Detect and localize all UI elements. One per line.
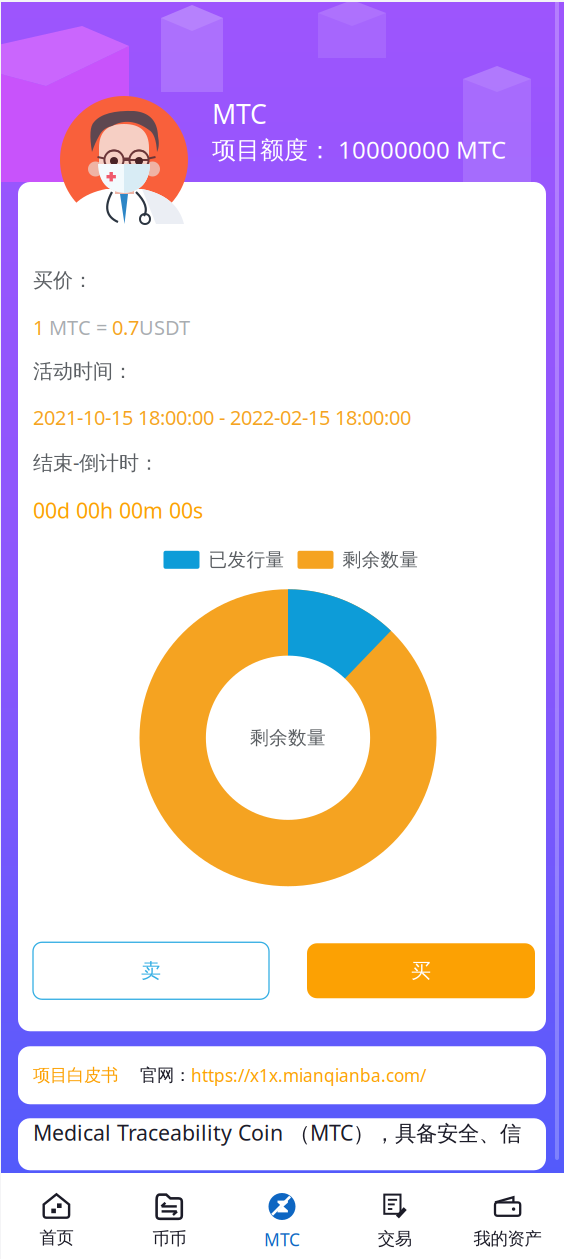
button[interactable]: 项目白皮书: [33, 1065, 118, 1086]
staticText: 剩余数量: [342, 548, 418, 571]
staticText: https://x1x.mianqianba.com/: [191, 1064, 426, 1087]
staticText: 剩余数量: [250, 726, 326, 749]
staticText: 买价：: [33, 268, 93, 293]
staticText: 2021-10-15 18:00:00 - 2022-02-15 18:00:0…: [33, 404, 411, 431]
staticText: 首页: [39, 1227, 73, 1248]
staticText: 我的资产: [474, 1228, 542, 1249]
staticText: 已发行量: [208, 548, 284, 571]
button[interactable]: 交易: [338, 1173, 451, 1259]
staticText: 卖: [141, 958, 161, 983]
button[interactable]: 首页: [0, 1173, 113, 1259]
staticText: 00d 00h 00m 00s: [33, 496, 203, 524]
staticText: 0.7: [112, 314, 139, 341]
staticText: MTC: [264, 1228, 300, 1251]
staticText: 官网：: [140, 1065, 191, 1086]
staticText: USDT: [139, 314, 190, 341]
button[interactable]: https://x1x.mianqianba.com/: [191, 1064, 426, 1087]
button[interactable]: 币币: [113, 1173, 226, 1259]
staticText: 结束-倒计时：: [33, 449, 159, 476]
staticText: 活动时间：: [33, 359, 133, 384]
staticText: Medical Traceability Coin （MTC），具备安全、信: [33, 1118, 521, 1147]
staticText: 买: [411, 958, 431, 983]
staticText: MTC =: [44, 314, 112, 341]
staticText: 项目额度： 10000000 MTC: [212, 133, 506, 165]
staticText: 币币: [152, 1228, 186, 1249]
button[interactable]: MTC: [226, 1173, 338, 1259]
staticText: 1: [33, 314, 44, 341]
staticText: 交易: [378, 1228, 412, 1249]
button[interactable]: 买: [307, 943, 535, 998]
button[interactable]: 我的资产: [451, 1173, 564, 1259]
button[interactable]: 卖: [33, 942, 269, 999]
staticText: 项目白皮书: [33, 1065, 118, 1086]
staticText: MTC: [212, 96, 267, 131]
